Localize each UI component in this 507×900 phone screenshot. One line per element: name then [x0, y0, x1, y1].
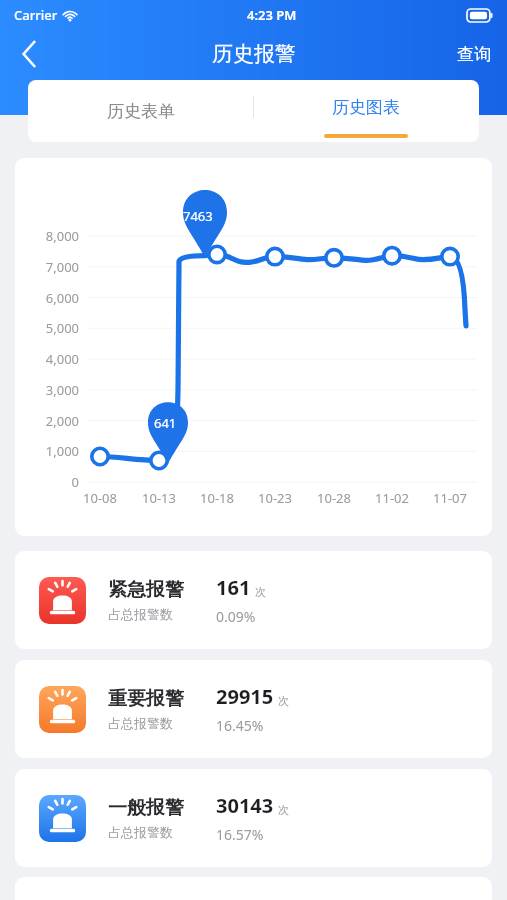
- staticText: 3,000: [15, 381, 79, 399]
- staticText: 641: [154, 414, 177, 432]
- staticText: 紧急报警: [108, 578, 184, 602]
- staticText: 11-02: [362, 489, 422, 507]
- staticText: 次: [278, 694, 289, 708]
- button[interactable]: 一般报警: [15, 769, 492, 867]
- button[interactable]: 历史图表: [253, 80, 479, 142]
- staticText: 历史图表: [332, 97, 400, 118]
- staticText: 重要报警: [108, 687, 184, 711]
- staticText: 次: [255, 585, 266, 599]
- staticText: 10-08: [70, 489, 130, 507]
- staticText: 4,000: [15, 350, 79, 368]
- staticText: 1,000: [15, 442, 79, 460]
- staticText: 5,000: [15, 319, 79, 337]
- staticText: 4:23 PM: [247, 6, 297, 24]
- button[interactable]: Back: [8, 32, 52, 76]
- staticText: 历史报警: [212, 41, 296, 67]
- staticText: 2,000: [15, 412, 79, 430]
- staticText: 10-13: [129, 489, 189, 507]
- staticText: 10-23: [245, 489, 305, 507]
- staticText: 10-28: [304, 489, 364, 507]
- staticText: 7463: [183, 207, 213, 225]
- staticText: 6,000: [15, 289, 79, 307]
- button[interactable]: 紧急报警: [15, 551, 492, 649]
- button[interactable]: 查询: [451, 38, 497, 71]
- staticText: 占总报警数: [108, 824, 173, 840]
- staticText: 查询: [457, 44, 491, 65]
- staticText: 16.45%: [216, 716, 264, 735]
- staticText: 历史表单: [107, 101, 175, 122]
- staticText: 16.57%: [216, 825, 264, 844]
- staticText: 10-18: [187, 489, 247, 507]
- button[interactable]: 重要报警: [15, 660, 492, 758]
- staticText: 11-07: [420, 489, 480, 507]
- staticText: 30143: [216, 792, 274, 819]
- button[interactable]: 历史表单: [28, 80, 253, 142]
- staticText: 7,000: [15, 258, 79, 276]
- staticText: 0.09%: [216, 607, 256, 626]
- staticText: 占总报警数: [108, 715, 173, 731]
- staticText: 8,000: [15, 227, 79, 245]
- staticText: 占总报警数: [108, 606, 173, 622]
- staticText: 次: [278, 803, 289, 817]
- staticText: Carrier: [14, 6, 58, 24]
- staticText: 161: [216, 574, 251, 601]
- staticText: 0: [15, 473, 79, 491]
- staticText: 一般报警: [108, 796, 184, 820]
- staticText: 29915: [216, 683, 274, 710]
